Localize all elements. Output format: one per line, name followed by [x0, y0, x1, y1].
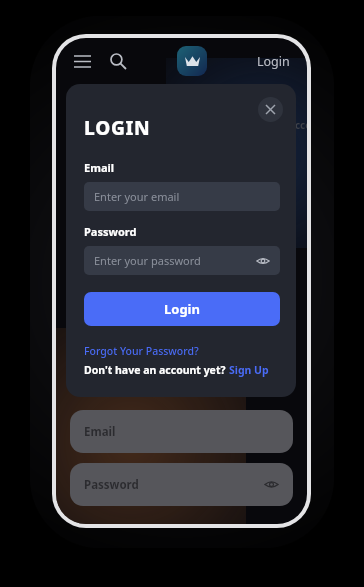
button[interactable]: Menu [69, 48, 95, 74]
button[interactable]: Home logo [177, 46, 207, 76]
staticText: Email [84, 160, 115, 175]
button[interactable]: Login [253, 49, 294, 74]
staticText: Password [84, 224, 137, 239]
staticText: Enter your email [94, 189, 180, 204]
staticText: LOGIN [84, 115, 151, 141]
button[interactable]: Close [258, 97, 283, 122]
staticText: Enter your password [94, 253, 201, 268]
button[interactable]: Search [105, 48, 131, 74]
staticText: Account [288, 118, 307, 132]
staticText: Login [257, 53, 290, 70]
staticText: Email [84, 424, 116, 440]
button[interactable]: Email [70, 410, 293, 453]
staticText: Sign Up [229, 363, 269, 377]
staticText: Password [84, 477, 139, 493]
button[interactable]: Forgot Your Password? [84, 344, 199, 358]
button[interactable]: Enter your email [84, 182, 280, 211]
staticText: Don't have an account yet? [84, 363, 229, 377]
button[interactable]: Password [70, 463, 293, 506]
staticText: Forgot Your Password? [84, 344, 199, 358]
button[interactable]: Sign Up [229, 363, 269, 377]
button[interactable]: Login [84, 292, 280, 326]
button[interactable]: Enter your password [84, 246, 280, 275]
staticText: Login [164, 300, 200, 318]
